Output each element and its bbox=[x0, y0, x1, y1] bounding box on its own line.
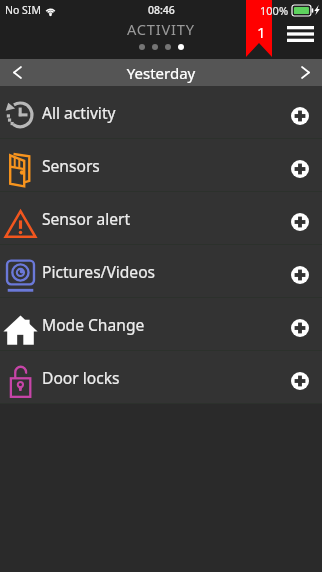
staticText: 100% bbox=[260, 3, 289, 18]
button[interactable]: Sensors bbox=[0, 139, 322, 191]
button[interactable]: Menu bbox=[280, 15, 320, 53]
button[interactable]: Door locks bbox=[0, 351, 322, 403]
staticText: 08:46 bbox=[148, 3, 175, 17]
staticText: Sensors bbox=[42, 155, 100, 176]
button[interactable]: All activity bbox=[0, 86, 322, 138]
button[interactable]: Add Door locks bbox=[283, 364, 317, 398]
button[interactable]: Previous day bbox=[0, 59, 34, 86]
staticText: No SIM bbox=[5, 3, 41, 17]
button[interactable]: Add All activity bbox=[283, 99, 317, 133]
staticText: Door locks bbox=[42, 367, 120, 388]
staticText: Mode Change bbox=[42, 314, 145, 335]
button[interactable]: Next day bbox=[288, 59, 322, 86]
button[interactable]: Add Sensor alert bbox=[283, 205, 317, 239]
button[interactable]: Add Pictures/Videos bbox=[283, 258, 317, 292]
staticText: Yesterday bbox=[34, 63, 288, 83]
button[interactable]: Sensor alert bbox=[0, 192, 322, 244]
staticText: 1 bbox=[257, 22, 266, 42]
staticText: All activity bbox=[42, 102, 116, 123]
staticText: ACTIVITY bbox=[127, 19, 195, 39]
button[interactable]: Add Sensors bbox=[283, 152, 317, 186]
staticText: Sensor alert bbox=[42, 208, 131, 229]
button[interactable]: Mode Change bbox=[0, 298, 322, 350]
button[interactable]: Add Mode Change bbox=[283, 311, 317, 345]
button[interactable]: Pictures/Videos bbox=[0, 245, 322, 297]
staticText: Pictures/Videos bbox=[42, 261, 156, 282]
